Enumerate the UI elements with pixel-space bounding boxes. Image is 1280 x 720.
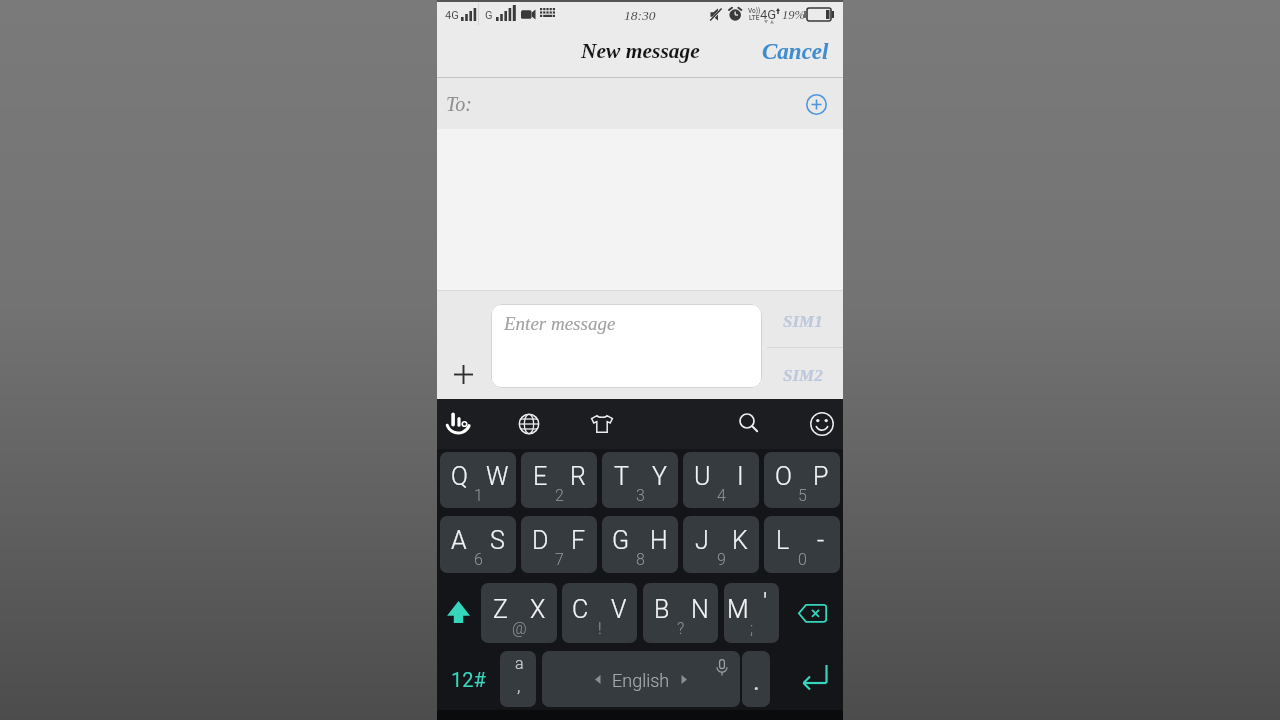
staticText: LTE	[749, 14, 760, 22]
button[interactable]: .	[742, 651, 770, 707]
staticText: M	[727, 595, 749, 624]
button[interactable]: 12#	[437, 651, 497, 707]
staticText: '	[763, 588, 768, 617]
button[interactable]	[583, 404, 621, 444]
button[interactable]: Enter message	[491, 304, 762, 388]
staticText: 3	[636, 486, 645, 505]
staticText: To:	[446, 93, 472, 115]
staticText: 9	[717, 550, 726, 569]
staticText: a	[515, 654, 524, 673]
staticText: 8	[636, 550, 645, 569]
button[interactable]	[437, 78, 843, 129]
staticText: F	[571, 526, 586, 555]
staticText: G	[485, 9, 493, 22]
staticText: 1	[474, 486, 483, 505]
button[interactable]: L	[764, 516, 840, 573]
button[interactable]: G	[602, 516, 678, 573]
staticText: ,	[517, 675, 521, 696]
staticText: S	[490, 526, 505, 555]
staticText: T	[614, 462, 629, 491]
button[interactable]: Z	[481, 583, 557, 643]
staticText: V	[611, 595, 627, 624]
button[interactable]	[730, 404, 768, 444]
button[interactable]	[510, 404, 548, 444]
button[interactable]: E	[521, 452, 597, 508]
button[interactable]: J	[683, 516, 759, 573]
button[interactable]	[785, 583, 843, 643]
staticText: Enter message	[504, 313, 616, 334]
staticText: A	[451, 526, 467, 555]
staticText: !	[598, 619, 602, 638]
staticText: 4G	[445, 9, 459, 22]
button[interactable]: M	[724, 583, 779, 643]
button[interactable]: O	[764, 452, 840, 508]
button[interactable]: D	[521, 516, 597, 573]
staticText: 12#	[451, 668, 486, 691]
button[interactable]: T	[602, 452, 678, 508]
button[interactable]	[802, 90, 831, 119]
staticText: Vo))	[748, 7, 761, 15]
button[interactable]	[777, 651, 843, 707]
button[interactable]: Q	[440, 452, 516, 508]
staticText: W	[486, 462, 509, 491]
button[interactable]: SIM1	[783, 312, 823, 331]
staticText: 4G	[760, 7, 777, 22]
button[interactable]: U	[683, 452, 759, 508]
staticText: L	[776, 526, 790, 555]
staticText: 19%	[782, 8, 805, 22]
button[interactable]: a	[500, 651, 536, 707]
staticText: E	[533, 462, 548, 491]
staticText: 0	[798, 550, 807, 569]
staticText: 2	[555, 486, 564, 505]
staticText: 6	[474, 550, 483, 569]
staticText: Z	[493, 595, 508, 624]
staticText: New message	[581, 39, 700, 63]
staticText: Q	[451, 462, 468, 491]
staticText: I	[737, 462, 744, 491]
staticText: R	[570, 462, 586, 491]
staticText: ?	[677, 619, 685, 638]
staticText: P	[813, 462, 829, 491]
staticText: C	[572, 595, 589, 624]
staticText: G	[612, 526, 630, 555]
button[interactable]	[437, 583, 479, 643]
staticText: Y	[652, 462, 667, 491]
staticText: J	[695, 526, 709, 555]
staticText: @	[512, 619, 527, 638]
button[interactable]: C	[562, 583, 637, 643]
staticText: B	[654, 595, 670, 624]
staticText: 18:30	[624, 8, 656, 23]
staticText: N	[691, 595, 709, 624]
staticText: -	[817, 526, 825, 555]
button[interactable]: Cancel	[762, 39, 829, 64]
staticText: English	[612, 670, 670, 691]
staticText: 5	[798, 486, 807, 505]
button[interactable]: A	[440, 516, 516, 573]
staticText: X	[530, 595, 546, 624]
button[interactable]: SIM2	[783, 366, 823, 385]
staticText: ;	[750, 619, 754, 638]
staticText: 4	[717, 486, 726, 505]
staticText: K	[732, 526, 748, 555]
button[interactable]: B	[643, 583, 718, 643]
button[interactable]	[440, 404, 477, 444]
button[interactable]: English	[542, 651, 740, 707]
staticText: 7	[555, 550, 564, 569]
staticText: H	[650, 526, 668, 555]
staticText: .	[753, 666, 760, 696]
staticText: D	[532, 526, 549, 555]
staticText: O	[775, 462, 792, 491]
staticText: U	[694, 462, 711, 491]
button[interactable]	[803, 404, 841, 444]
